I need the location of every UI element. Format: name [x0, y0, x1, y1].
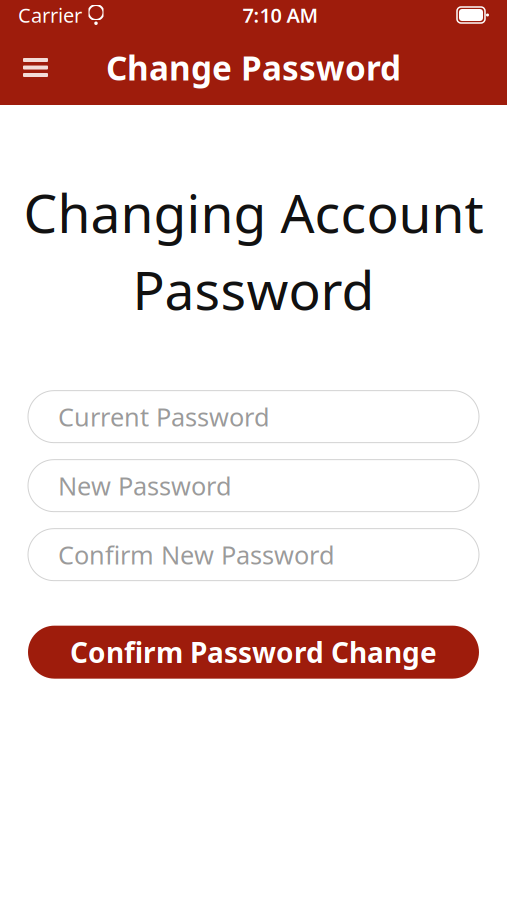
- button[interactable]: Menu: [11, 46, 60, 89]
- staticText: Confirm New Password: [58, 538, 335, 571]
- staticText: New Password: [58, 469, 232, 502]
- staticText: Password: [132, 254, 374, 325]
- staticText: 7:10 AM: [242, 2, 318, 28]
- button[interactable]: Confirm Password Change: [28, 626, 479, 679]
- staticText: Change Password: [106, 45, 401, 90]
- staticText: Current Password: [58, 400, 270, 433]
- staticText: Confirm Password Change: [70, 634, 437, 671]
- staticText: Changing Account: [23, 177, 483, 248]
- staticText: Carrier: [18, 2, 82, 28]
